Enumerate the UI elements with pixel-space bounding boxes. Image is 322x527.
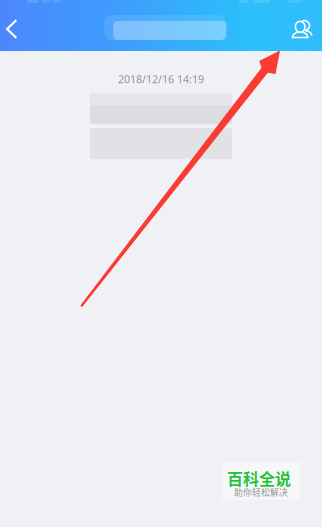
staticText: 2018/12/16 14:19 xyxy=(118,72,204,86)
button[interactable]: Back xyxy=(0,13,26,45)
staticText: 助你轻松解决 xyxy=(234,486,288,498)
staticText: 百科全说 xyxy=(227,466,291,490)
button[interactable]: Group members xyxy=(283,10,321,46)
